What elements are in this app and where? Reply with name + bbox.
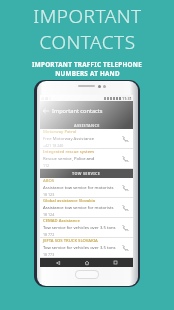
staticText: 112: [43, 163, 50, 168]
staticText: Tow service for vehicles over 3.5 tons: [43, 225, 116, 231]
staticText: Motorway Patrol: [43, 129, 77, 135]
button[interactable]: Recents: [105, 258, 125, 267]
staticText: Assistance tow service for motorists: [43, 205, 114, 211]
staticText: Assistance tow service for motorists: [43, 185, 114, 191]
staticText: 11:31: [122, 96, 132, 101]
staticText: 18 123: [43, 192, 55, 197]
button[interactable]: Global assistance Slovakia: [40, 198, 133, 217]
staticText: IMPORTANT: [33, 3, 142, 29]
button[interactable]: ABOS: [40, 178, 133, 197]
staticText: Important contacts: [52, 107, 103, 115]
button[interactable]: CEMAD Assistance: [40, 218, 133, 237]
staticText: 18 773: [43, 252, 55, 257]
button[interactable]: Integrated rescue system: [40, 149, 133, 168]
staticText: ASSISTANCE: [74, 123, 100, 128]
staticText: CONTACTS: [39, 29, 136, 55]
staticText: +421 18 240: [43, 143, 64, 148]
button[interactable]: Home: [77, 258, 97, 267]
staticText: IMPORTANT TRAFFIC TELEPHONE: [32, 60, 142, 69]
staticText: CEMAD Assistance: [43, 218, 80, 224]
button[interactable]: Call: [117, 129, 133, 148]
staticText: Rescue service, Police and Firefighters: [43, 156, 117, 162]
button[interactable]: Back: [40, 101, 52, 121]
staticText: Global assistance Slovakia: [43, 198, 96, 204]
staticText: TOW SERVICE: [72, 171, 101, 176]
staticText: ABOS: [43, 178, 55, 184]
staticText: 18 124: [43, 212, 55, 217]
staticText: Integrated rescue system: [43, 149, 95, 155]
staticText: Tow service for vehicles over 3.5 tons: [43, 245, 116, 251]
staticText: Free Motorway Assistance: [43, 136, 95, 142]
button[interactable]: Call: [117, 198, 133, 217]
button[interactable]: Call: [117, 218, 133, 237]
staticText: NUMBERS AT HAND: [55, 69, 120, 78]
button[interactable]: JEFTA SOS TRUCK SLOVAKIA: [40, 238, 133, 257]
staticText: JEFTA SOS TRUCK SLOVAKIA: [43, 238, 98, 244]
button[interactable]: Call: [117, 178, 133, 197]
staticText: 18 772: [43, 232, 55, 237]
button[interactable]: Call: [117, 149, 133, 168]
button[interactable]: Motorway Patrol: [40, 129, 133, 148]
button[interactable]: Call: [117, 238, 133, 257]
button[interactable]: Back: [48, 258, 68, 267]
